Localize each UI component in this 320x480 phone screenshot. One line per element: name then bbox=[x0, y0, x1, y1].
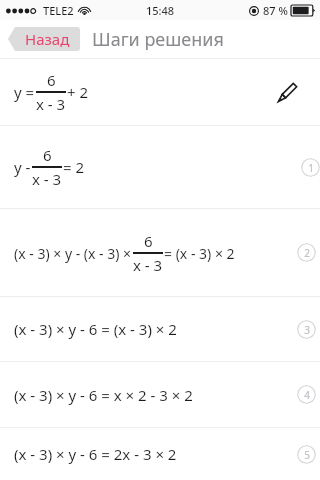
button[interactable]: Назад bbox=[8, 27, 80, 51]
staticText: y - bbox=[14, 157, 31, 177]
button[interactable]: (x - 3) × y - 6 = (x - 3) × 2 bbox=[0, 297, 320, 361]
staticText: = (x - 3) × 2 bbox=[164, 244, 235, 263]
staticText: 87 % bbox=[263, 3, 288, 18]
staticText: 4 bbox=[304, 388, 310, 402]
button[interactable]: (x - 3) × y - (x - 3) × bbox=[0, 209, 320, 296]
staticText: (x - 3) × y - (x - 3) × bbox=[14, 244, 132, 263]
staticText: 6 bbox=[144, 231, 153, 251]
staticText: 1 bbox=[308, 161, 314, 175]
staticText: + 2 bbox=[67, 82, 89, 102]
staticText: Шаги решения bbox=[92, 27, 224, 52]
staticText: 3 bbox=[304, 323, 310, 337]
button[interactable]: (x - 3) × y - 6 = x × 2 - 3 × 2 bbox=[0, 362, 320, 427]
staticText: 6 bbox=[47, 70, 56, 90]
staticText: = 2 bbox=[63, 157, 85, 177]
staticText: y = bbox=[14, 82, 35, 102]
staticText: (x - 3) × y - 6 = 2x - 3 × 2 bbox=[14, 444, 177, 464]
staticText: 15:48 bbox=[146, 3, 175, 18]
staticText: Назад bbox=[25, 29, 70, 49]
button[interactable]: Редактировать bbox=[272, 76, 304, 108]
button[interactable]: (x - 3) × y - 6 = 2x - 3 × 2 bbox=[0, 428, 320, 480]
staticText: (x - 3) × y - 6 = x × 2 - 3 × 2 bbox=[14, 385, 193, 405]
staticText: 5 bbox=[304, 448, 310, 462]
staticText: (x - 3) × y - 6 = (x - 3) × 2 bbox=[14, 319, 177, 339]
staticText: x - 3 bbox=[133, 255, 163, 275]
button[interactable]: y - bbox=[0, 126, 320, 208]
staticText: 6 bbox=[43, 145, 52, 165]
staticText: 2 bbox=[304, 246, 310, 260]
staticText: x - 3 bbox=[36, 94, 66, 114]
button[interactable]: y = bbox=[0, 59, 320, 125]
staticText: TELE2 bbox=[43, 3, 74, 18]
staticText: x - 3 bbox=[32, 169, 62, 189]
